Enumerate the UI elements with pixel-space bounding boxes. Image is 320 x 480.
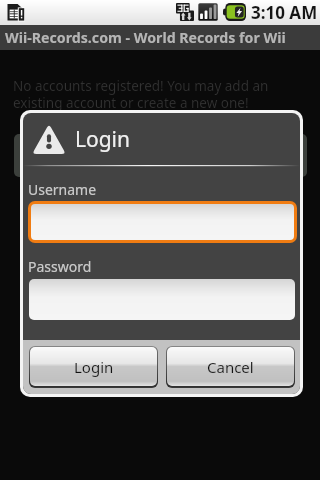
- staticText: Password: [28, 257, 92, 276]
- staticText: No accounts registered! You may add an e…: [13, 77, 293, 112]
- staticText: Username: [28, 180, 97, 199]
- staticText: Cancel: [207, 357, 254, 377]
- staticText: Login: [74, 357, 114, 377]
- staticText: Wii-Records.com - World Records for Wii: [5, 28, 286, 47]
- staticText: Login: [75, 125, 131, 154]
- staticText: 3:10 AM: [251, 1, 318, 24]
- button[interactable]: Login: [30, 347, 157, 386]
- button[interactable]: Cancel: [167, 347, 294, 386]
- button[interactable]: [31, 204, 294, 240]
- button[interactable]: [29, 279, 295, 320]
